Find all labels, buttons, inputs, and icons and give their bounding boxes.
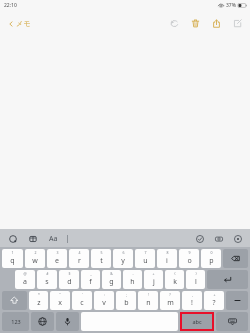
staticText: + [213, 292, 216, 297]
button[interactable]: ' [72, 291, 92, 310]
button[interactable]: abc [181, 313, 213, 330]
button[interactable]: New note [230, 16, 244, 30]
staticText: q [10, 256, 15, 266]
button[interactable]: + [204, 291, 224, 310]
staticText: + [152, 271, 155, 276]
button[interactable]: ( [165, 270, 184, 289]
staticText: メモ [16, 19, 31, 28]
button[interactable]: Clipboard [26, 232, 39, 245]
staticText: t [100, 256, 103, 266]
button[interactable]: ? [160, 291, 180, 310]
staticText: $ [68, 271, 71, 276]
button[interactable]: 7 [135, 249, 155, 268]
button[interactable]: _ [81, 270, 100, 289]
button[interactable]: ; [116, 291, 136, 310]
staticText: y [121, 256, 125, 266]
button[interactable]: 3 [47, 249, 67, 268]
button[interactable]: Shift [2, 291, 27, 310]
button[interactable]: Minus [226, 291, 248, 310]
button[interactable]: # [37, 270, 57, 289]
staticText: e [55, 256, 59, 266]
staticText: 22:10 [4, 2, 17, 9]
staticText: 9 [188, 250, 191, 255]
button[interactable]: Aa [46, 232, 60, 245]
staticText: : [104, 292, 105, 297]
button[interactable]: 1 [2, 249, 23, 268]
staticText: h [130, 277, 135, 287]
button[interactable]: 5 [91, 249, 111, 268]
staticText: a [23, 277, 27, 287]
button[interactable]: Camera [212, 232, 225, 245]
staticText: ! [191, 298, 193, 308]
button[interactable]: 9 [179, 249, 199, 268]
staticText: abc [192, 318, 202, 325]
staticText: 3 [56, 250, 59, 255]
button[interactable]: @ [15, 270, 35, 289]
button[interactable]: メモ [6, 17, 33, 30]
staticText: l [195, 277, 197, 287]
staticText: 0 [210, 250, 213, 255]
button[interactable]: Voice input [56, 312, 79, 331]
button[interactable]: Delete [188, 16, 202, 30]
staticText: ) [195, 271, 197, 276]
staticText: " [59, 292, 61, 297]
button[interactable]: * [29, 291, 48, 310]
staticText: , [192, 292, 193, 297]
staticText: d [67, 277, 72, 287]
staticText: w [32, 256, 38, 266]
button[interactable]: , [182, 291, 202, 310]
button[interactable]: 6 [113, 249, 133, 268]
staticText: 4 [78, 250, 81, 255]
staticText: @ [23, 271, 27, 276]
button[interactable]: Settings [231, 232, 244, 245]
button[interactable]: Backspace [223, 249, 248, 268]
staticText: & [110, 271, 113, 276]
button[interactable]: & [102, 270, 121, 289]
button[interactable]: Share [209, 16, 223, 30]
button[interactable]: Done [193, 232, 206, 245]
button[interactable]: Return [207, 270, 248, 289]
staticText: 7 [144, 250, 147, 255]
button[interactable]: 0 [201, 249, 221, 268]
staticText: p [209, 256, 214, 266]
staticText: # [46, 271, 49, 276]
button[interactable]: 123 [2, 312, 29, 331]
button[interactable]: Undo [167, 16, 181, 30]
staticText: n [146, 298, 151, 308]
button[interactable]: ! [138, 291, 158, 310]
button[interactable]: ) [186, 270, 205, 289]
staticText: b [124, 298, 129, 308]
button[interactable]: Change language [31, 312, 54, 331]
button[interactable]: 2 [25, 249, 45, 268]
button[interactable]: - [123, 270, 142, 289]
staticText: c [80, 298, 84, 308]
staticText: ? [169, 292, 171, 297]
staticText: ; [126, 292, 127, 297]
button[interactable]: Hide keyboard [216, 312, 248, 331]
staticText: 1 [11, 250, 14, 255]
staticText: u [143, 256, 148, 266]
staticText: r [78, 256, 81, 266]
button[interactable]: : [94, 291, 114, 310]
button[interactable]: + [144, 270, 163, 289]
staticText: v [102, 298, 106, 308]
staticText: Aa [49, 234, 58, 244]
staticText: g [109, 277, 114, 287]
staticText: k [173, 277, 177, 287]
button[interactable]: Stickers [6, 232, 19, 245]
staticText: x [58, 298, 62, 308]
button[interactable]: 4 [69, 249, 89, 268]
staticText: 2 [34, 250, 37, 255]
staticText: ! [148, 292, 149, 297]
staticText: m [167, 298, 174, 308]
button[interactable]: 8 [157, 249, 177, 268]
staticText: _ [90, 271, 92, 276]
staticText: ? [212, 298, 216, 308]
button[interactable]: " [50, 291, 70, 310]
staticText: 37% [226, 2, 236, 9]
staticText: j [153, 277, 155, 287]
staticText: - [132, 271, 134, 276]
staticText: ' [82, 292, 83, 297]
button[interactable]: $ [59, 270, 79, 289]
